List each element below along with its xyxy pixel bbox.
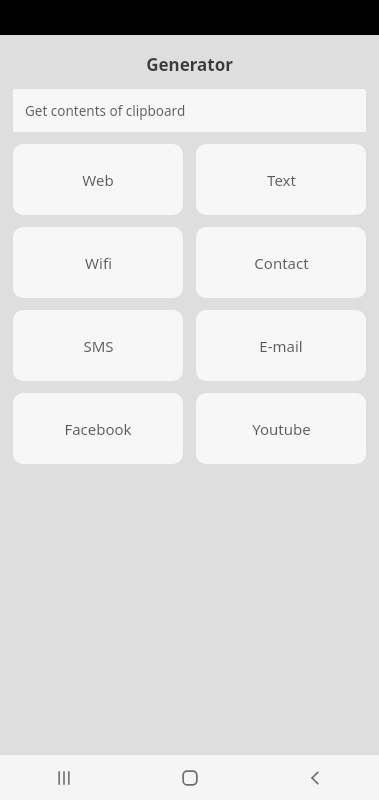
staticText: Wifi xyxy=(85,253,112,273)
button[interactable]: Back xyxy=(253,755,379,800)
staticText: E-mail xyxy=(259,336,303,356)
staticText: Generator xyxy=(0,53,379,76)
button[interactable]: Web xyxy=(13,144,183,215)
staticText: Text xyxy=(267,170,296,190)
button[interactable]: Wifi xyxy=(13,227,183,298)
staticText: Web xyxy=(82,170,114,190)
staticText: Get contents of clipboard xyxy=(25,102,186,120)
button[interactable]: Facebook xyxy=(13,393,183,464)
staticText: SMS xyxy=(83,336,114,356)
button[interactable]: Text xyxy=(196,144,366,215)
staticText: Contact xyxy=(254,253,309,273)
button[interactable]: Recent apps xyxy=(0,755,127,800)
button[interactable]: SMS xyxy=(13,310,183,381)
staticText: Youtube xyxy=(252,419,311,439)
staticText: Facebook xyxy=(64,419,132,439)
button[interactable]: Youtube xyxy=(196,393,366,464)
button[interactable]: Contact xyxy=(196,227,366,298)
button[interactable]: Home xyxy=(127,755,253,800)
button[interactable]: Get contents of clipboard xyxy=(13,89,366,132)
button[interactable]: E-mail xyxy=(196,310,366,381)
